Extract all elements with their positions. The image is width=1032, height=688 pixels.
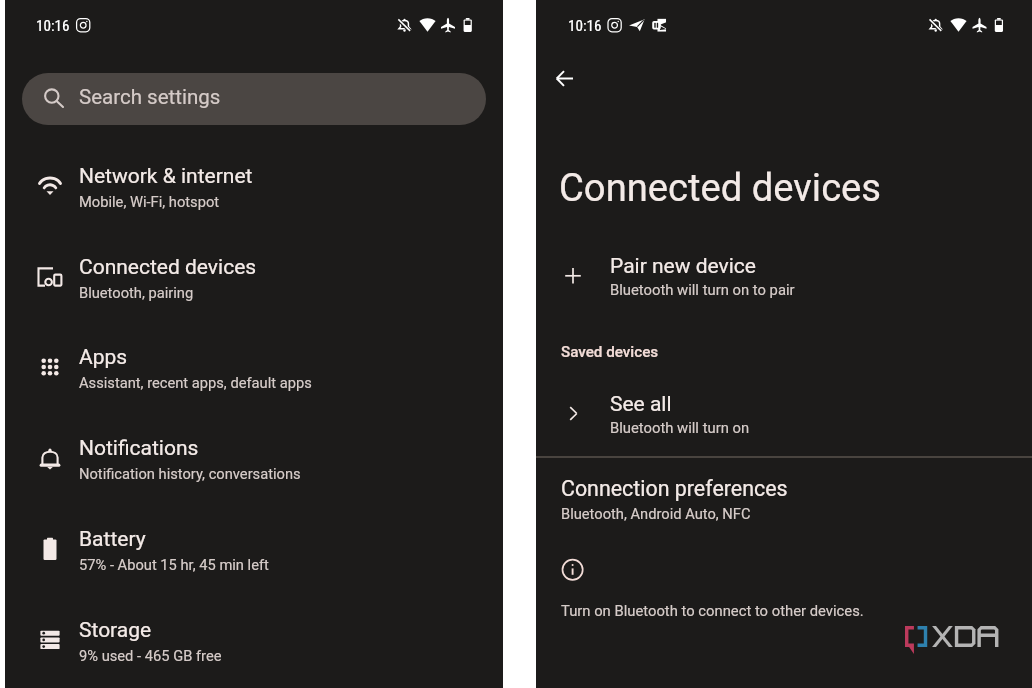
staticText: Connection preferences: [561, 476, 788, 501]
staticText: 9% used - 465 GB free: [79, 647, 222, 664]
staticText: Notifications: [79, 436, 199, 461]
staticText: Turn on Bluetooth to connect to other de…: [561, 602, 864, 619]
staticText: Bluetooth, Android Auto, NFC: [561, 505, 751, 522]
button[interactable]: Search settings: [22, 73, 486, 125]
staticText: Storage: [79, 618, 152, 643]
staticText: 57% - About 15 hr, 45 min left: [79, 556, 269, 573]
staticText: Bluetooth will turn on to pair: [610, 281, 795, 298]
button[interactable]: Pair new device: [536, 243, 1032, 311]
staticText: 10:16: [568, 17, 602, 35]
staticText: Connected devices: [79, 255, 257, 280]
staticText: Assistant, recent apps, default apps: [79, 374, 312, 391]
button[interactable]: Notifications: [0, 427, 503, 517]
staticText: Pair new device: [610, 254, 756, 279]
staticText: Search settings: [79, 85, 221, 109]
button[interactable]: Connected devices: [0, 246, 503, 336]
staticText: Notification history, conversations: [79, 465, 301, 482]
staticText: Connected devices: [559, 166, 882, 211]
staticText: Apps: [79, 345, 128, 370]
button[interactable]: Back: [548, 62, 581, 95]
staticText: Bluetooth will turn on: [610, 419, 750, 436]
staticText: Mobile, Wi-Fi, hotspot: [79, 193, 220, 210]
staticText: Network & internet: [79, 164, 253, 189]
button[interactable]: Battery: [0, 518, 503, 608]
staticText: Saved devices: [561, 343, 659, 361]
staticText: Battery: [79, 527, 146, 552]
button[interactable]: Apps: [0, 336, 503, 426]
button[interactable]: Network & internet: [0, 155, 503, 245]
staticText: 10:16: [36, 17, 70, 35]
button[interactable]: Connection preferences: [536, 466, 1032, 532]
button[interactable]: Storage: [0, 609, 503, 688]
button[interactable]: See all: [536, 383, 1032, 451]
staticText: Bluetooth, pairing: [79, 284, 194, 301]
staticText: See all: [610, 392, 672, 417]
